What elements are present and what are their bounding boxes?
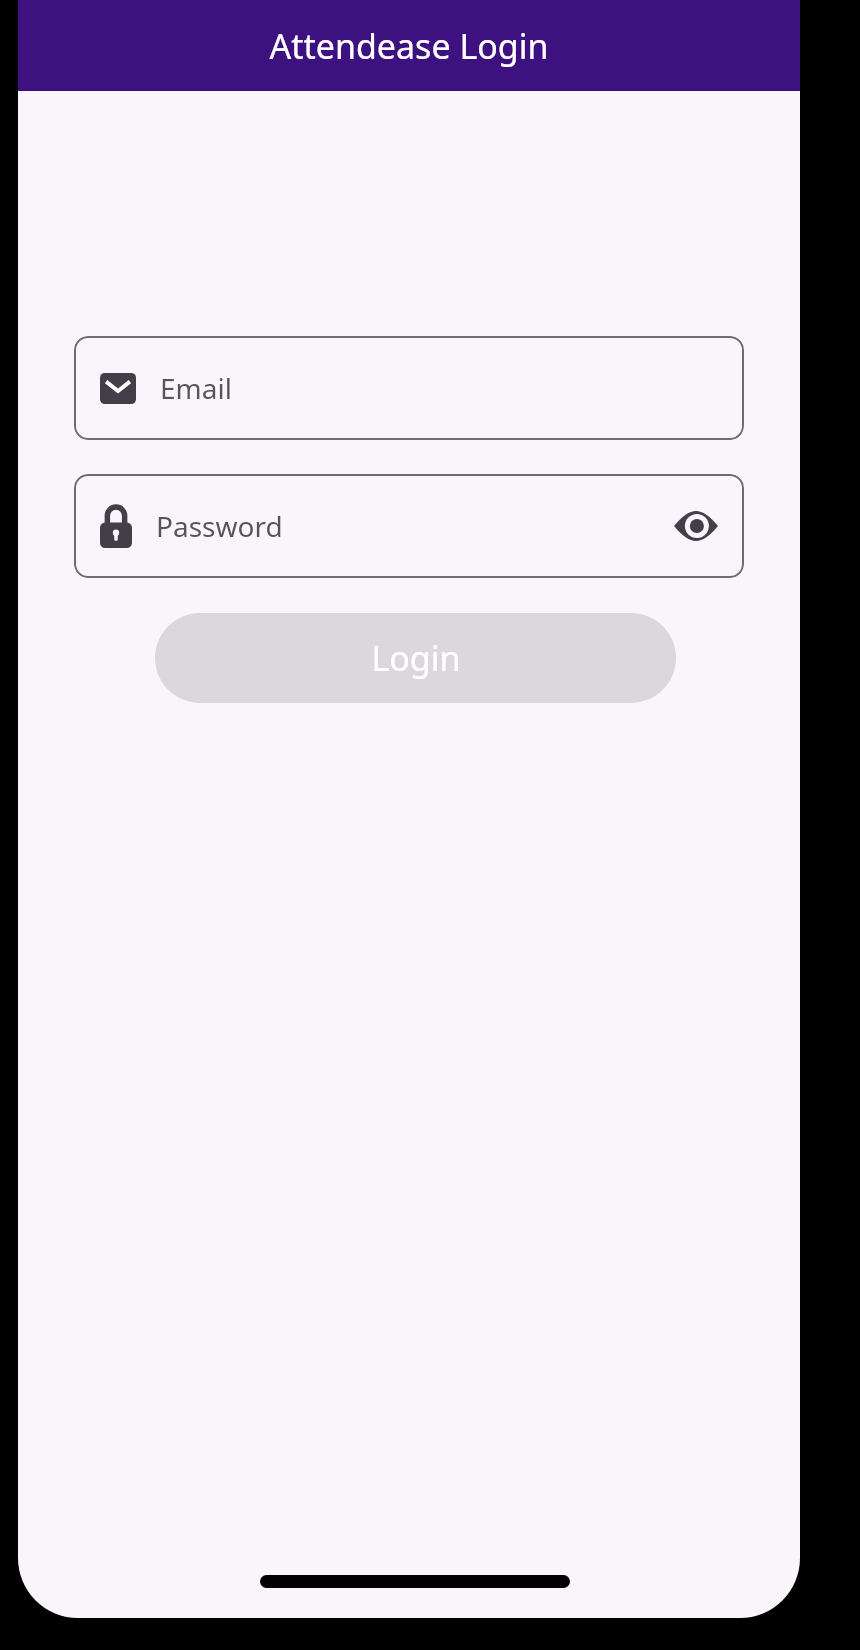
staticText: Email [160, 369, 232, 407]
button[interactable]: Email [74, 336, 744, 440]
staticText: Password [156, 507, 283, 545]
button[interactable]: Password [74, 474, 744, 578]
staticText: Attendease Login [269, 23, 549, 69]
button[interactable]: Show password [668, 498, 724, 554]
staticText: Login [371, 635, 461, 681]
button[interactable]: Login [155, 613, 676, 703]
